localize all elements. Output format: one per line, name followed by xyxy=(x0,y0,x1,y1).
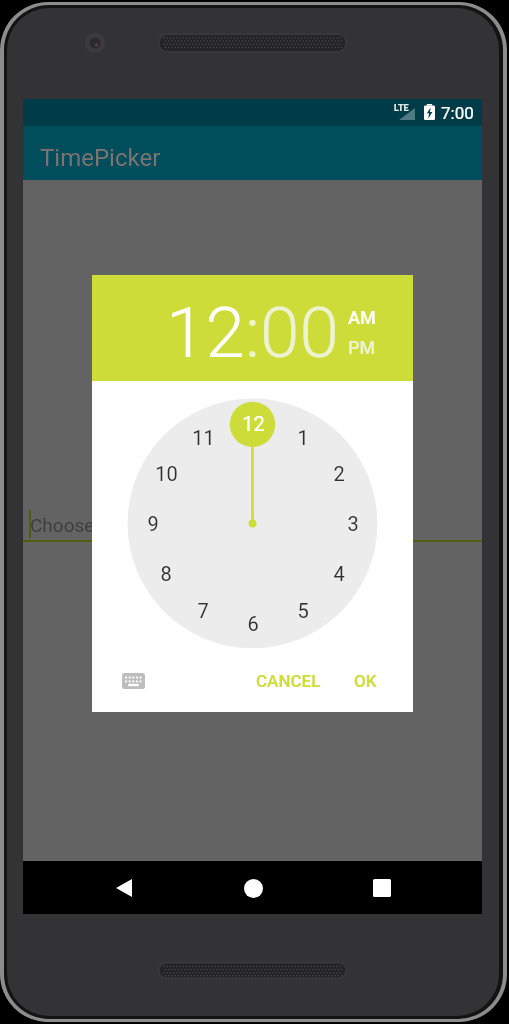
button[interactable]: OK xyxy=(346,661,385,701)
staticText: 5 xyxy=(297,599,309,622)
button[interactable]: 7 xyxy=(183,595,223,625)
button[interactable]: 12 xyxy=(233,408,273,438)
button[interactable]: Recent apps xyxy=(364,870,400,906)
staticText: 3 xyxy=(347,512,359,535)
staticText: 6 xyxy=(247,612,259,635)
staticText: 10 xyxy=(155,462,178,485)
staticText: Choose xyxy=(30,514,95,536)
button[interactable]: 9 xyxy=(133,508,173,538)
button[interactable]: AM xyxy=(348,307,376,328)
button[interactable]: 10 xyxy=(146,458,186,488)
staticText: TimePicker xyxy=(40,144,161,172)
button[interactable]: Back xyxy=(106,870,142,906)
staticText: PM xyxy=(348,337,376,358)
button[interactable]: Home xyxy=(235,870,271,906)
staticText: LTE xyxy=(394,103,409,114)
button[interactable]: Switch to keyboard input xyxy=(116,664,150,698)
staticText: 8 xyxy=(160,562,172,585)
staticText: : xyxy=(245,291,260,374)
button[interactable]: CANCEL xyxy=(248,661,329,701)
button[interactable]: 3 xyxy=(333,508,373,538)
staticText: 9 xyxy=(147,512,159,535)
staticText: 2 xyxy=(333,462,345,485)
button[interactable]: 1 xyxy=(283,422,323,452)
button[interactable]: 4 xyxy=(319,558,359,588)
button[interactable]: 8 xyxy=(146,558,186,588)
staticText: 7:00 xyxy=(441,103,474,123)
button[interactable]: PM xyxy=(348,337,376,358)
button[interactable]: 5 xyxy=(283,595,323,625)
staticText: 12 xyxy=(242,412,265,435)
staticText: OK xyxy=(354,671,377,691)
staticText: 4 xyxy=(333,562,345,585)
staticText: CANCEL xyxy=(256,671,321,691)
button[interactable]: 11 xyxy=(183,422,223,452)
button[interactable]: 2 xyxy=(319,458,359,488)
staticText: 11 xyxy=(192,426,215,449)
staticText: 00 xyxy=(260,291,339,374)
button[interactable]: 6 xyxy=(233,608,273,638)
staticText: 7 xyxy=(197,599,209,622)
staticText: AM xyxy=(348,307,376,328)
staticText: 12 xyxy=(166,291,245,374)
staticText: 1 xyxy=(297,426,309,449)
